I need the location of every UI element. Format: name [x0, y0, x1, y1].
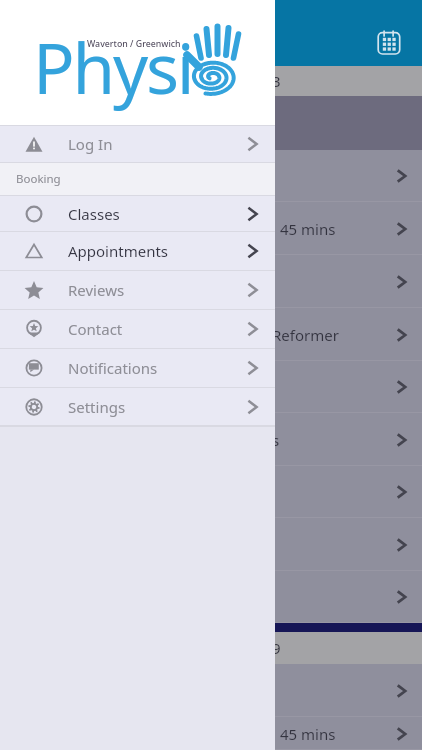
- staticText: 9: [272, 638, 281, 658]
- staticText: Classes: [68, 204, 244, 224]
- button[interactable]: : 45 mins: [0, 717, 422, 750]
- button[interactable]: s: [0, 413, 422, 466]
- button[interactable]: [0, 361, 422, 413]
- staticText: Notifications: [68, 358, 244, 378]
- staticText: Log In: [68, 134, 244, 154]
- staticText: Settings: [68, 397, 244, 417]
- button[interactable]: Classes: [0, 196, 275, 231]
- button[interactable]: Settings: [0, 388, 275, 425]
- button[interactable]: Appointments: [0, 232, 275, 270]
- staticText: Physi: [33, 20, 193, 114]
- button[interactable]: Reformer: [0, 308, 422, 361]
- staticText: Contact: [68, 319, 244, 339]
- button[interactable]: [0, 150, 422, 202]
- button[interactable]: Reviews: [0, 271, 275, 309]
- button[interactable]: [0, 466, 422, 518]
- staticText: Booking: [16, 171, 61, 187]
- button[interactable]: [0, 255, 422, 308]
- staticText: 3: [272, 71, 281, 91]
- button[interactable]: Calendar: [367, 21, 411, 65]
- staticText: Reformer: [272, 325, 339, 345]
- staticText: Appointments: [68, 241, 244, 261]
- staticText: Waverton / Greenwich: [87, 38, 181, 50]
- button[interactable]: Contact: [0, 310, 275, 348]
- button[interactable]: Log In: [0, 126, 275, 162]
- staticText: s: [272, 430, 280, 450]
- button[interactable]: : 45 mins: [0, 202, 422, 255]
- button[interactable]: [0, 518, 422, 571]
- staticText: Reviews: [68, 280, 244, 300]
- button[interactable]: [0, 664, 422, 717]
- staticText: : 45 mins: [272, 219, 336, 239]
- staticText: : 45 mins: [272, 724, 336, 744]
- button[interactable]: [0, 571, 422, 623]
- button[interactable]: Notifications: [0, 349, 275, 387]
